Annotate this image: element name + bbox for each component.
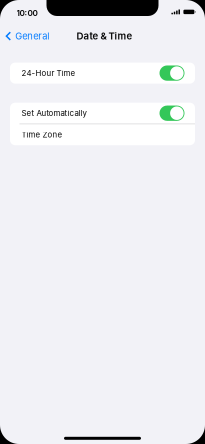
staticText: Set Automatically (21, 108, 86, 118)
button[interactable]: Time Zone (10, 124, 195, 145)
staticText: Date & Time (76, 30, 132, 42)
staticText: General (15, 30, 49, 42)
staticText: Time Zone (21, 130, 62, 139)
staticText: 10:00 (17, 8, 38, 18)
button[interactable]: 24-Hour Time (10, 63, 195, 84)
staticText: 24-Hour Time (21, 68, 75, 78)
button[interactable]: General (0, 27, 55, 45)
button[interactable]: Set Automatically (10, 103, 195, 124)
